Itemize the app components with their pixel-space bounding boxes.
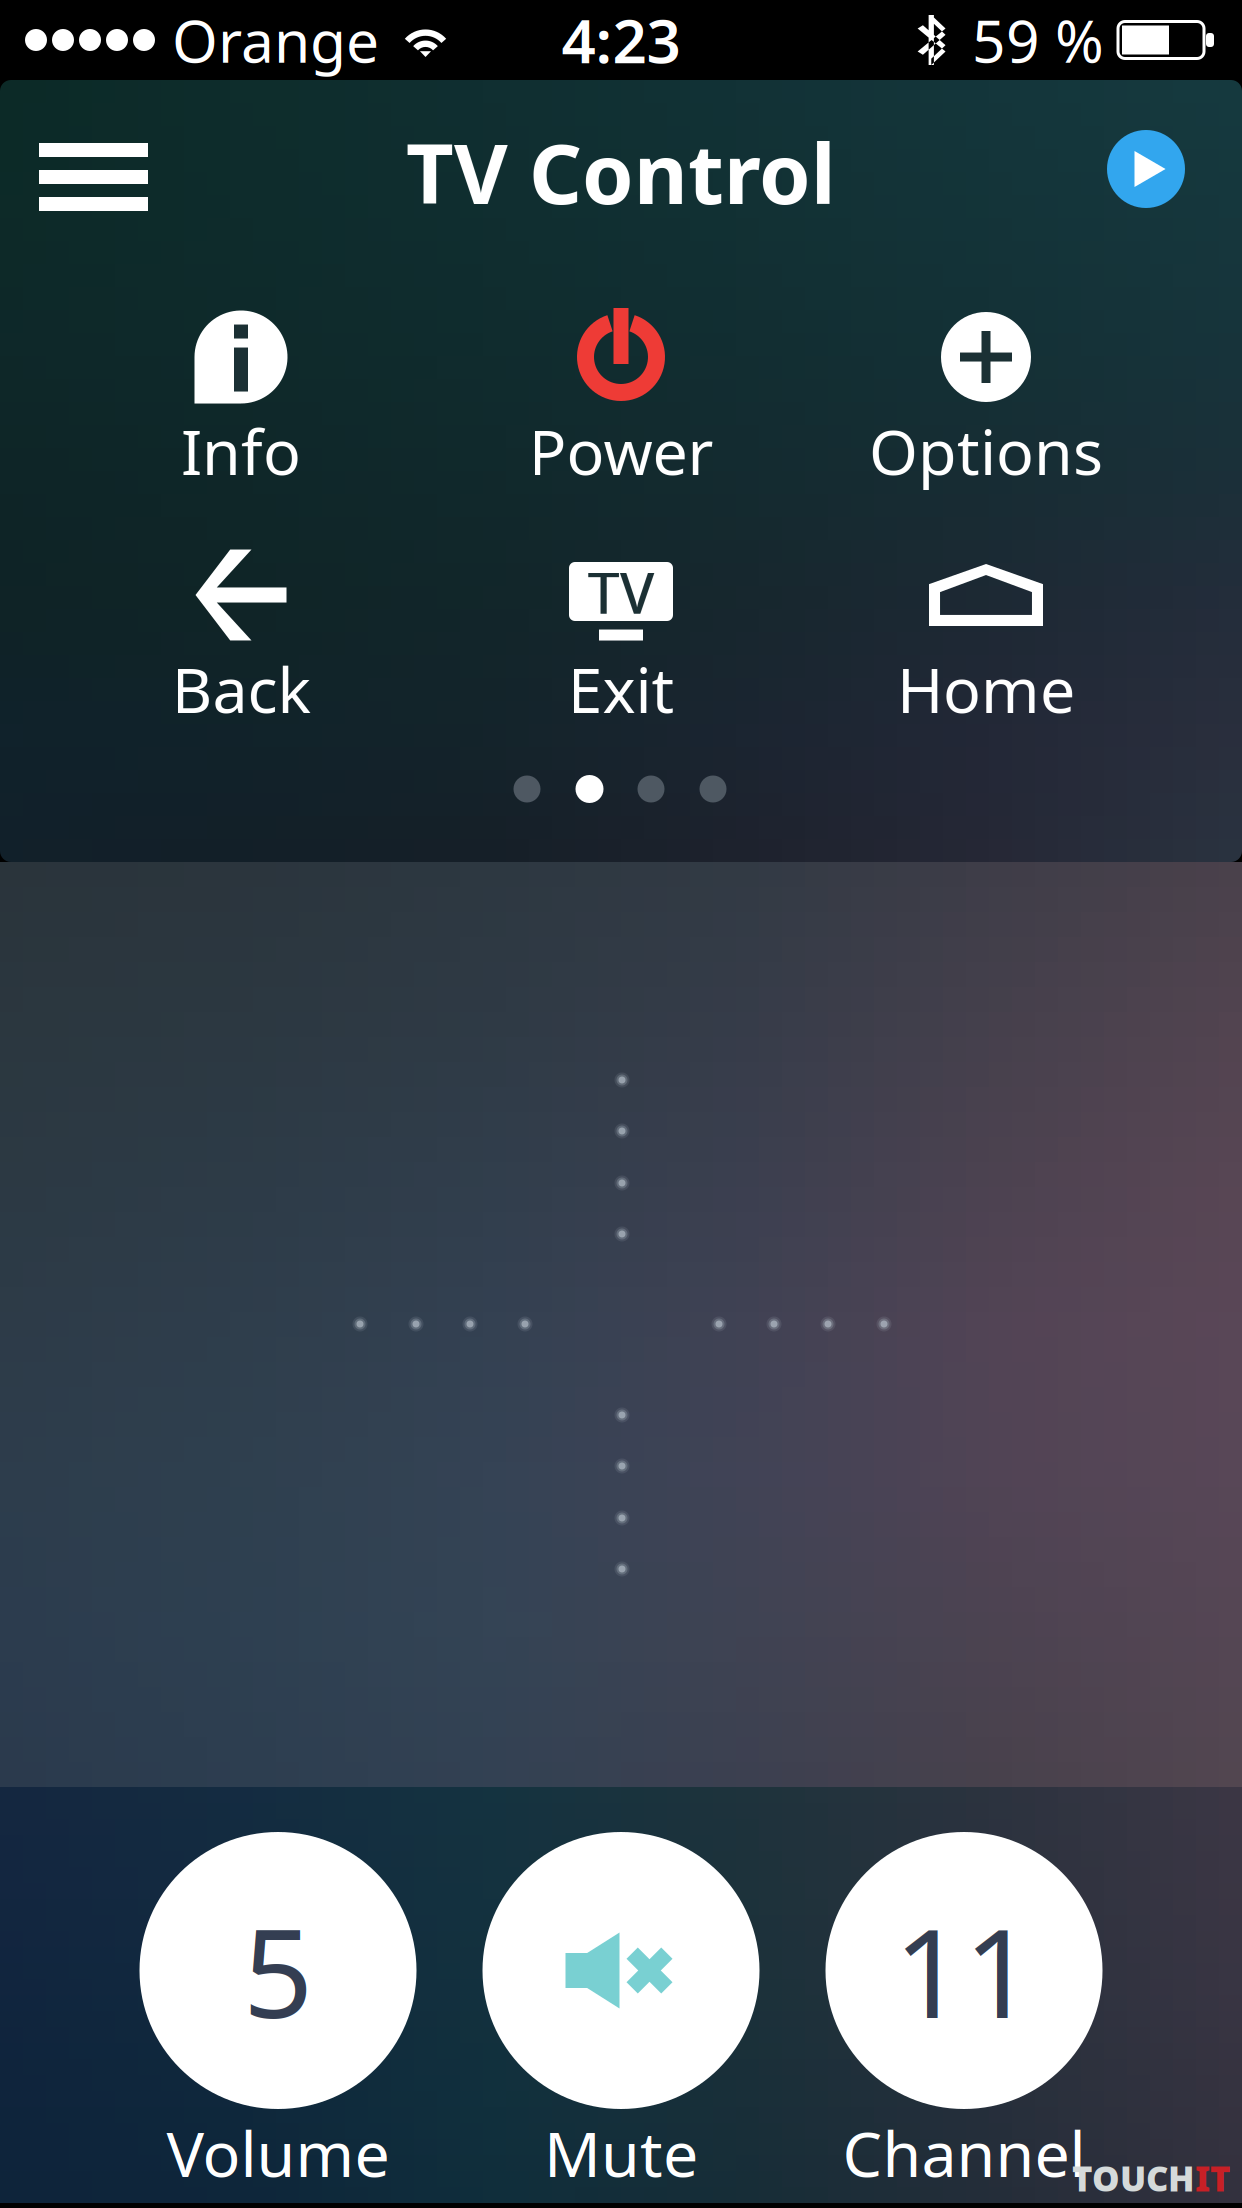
staticText: Channel bbox=[842, 2111, 1085, 2194]
button[interactable]: TV bbox=[456, 545, 786, 731]
button[interactable]: 11 bbox=[814, 1832, 1114, 2187]
staticText: Mute bbox=[544, 2111, 698, 2194]
staticText: Volume bbox=[166, 2111, 389, 2194]
button[interactable]: Play bbox=[1078, 89, 1214, 249]
button[interactable]: Options bbox=[821, 307, 1151, 493]
button[interactable]: 5 bbox=[128, 1832, 428, 2187]
staticText: TV bbox=[587, 553, 654, 629]
staticText: Power bbox=[528, 409, 713, 492]
staticText: TV Control bbox=[406, 117, 836, 227]
staticText: 4:23 bbox=[561, 0, 680, 80]
staticText: 11 bbox=[894, 1889, 1034, 2052]
staticText: Options bbox=[869, 409, 1103, 492]
button[interactable]: Home bbox=[821, 545, 1151, 731]
staticText: Info bbox=[181, 409, 301, 492]
staticText: TOUCH bbox=[1072, 2155, 1195, 2201]
staticText: IT bbox=[1195, 2155, 1230, 2201]
button[interactable]: Info bbox=[76, 307, 406, 493]
staticText: 5 bbox=[243, 1889, 313, 2052]
staticText: Home bbox=[897, 647, 1075, 730]
button[interactable]: Touch pad bbox=[0, 862, 1242, 1787]
button[interactable]: Mute bbox=[471, 1832, 771, 2187]
button[interactable]: Menu bbox=[0, 89, 187, 249]
staticText: Orange bbox=[172, 1, 379, 79]
staticText: 59 % bbox=[972, 1, 1104, 79]
button[interactable]: Power bbox=[456, 307, 786, 493]
staticText: Exit bbox=[567, 647, 674, 730]
staticText: Back bbox=[171, 647, 310, 730]
button[interactable]: Back bbox=[76, 545, 406, 731]
